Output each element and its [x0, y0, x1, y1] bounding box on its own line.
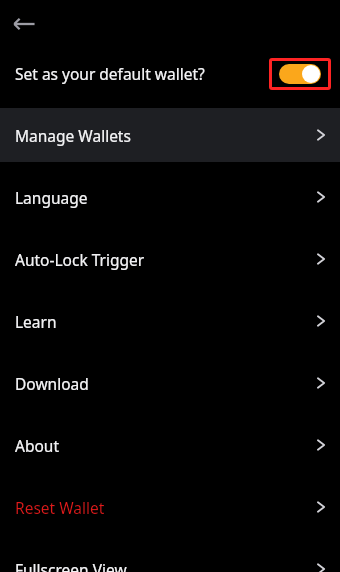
staticText: About	[15, 435, 59, 456]
button[interactable]: Manage Wallets	[0, 108, 340, 162]
button[interactable]: Learn	[0, 294, 340, 348]
button[interactable]: Download	[0, 356, 340, 410]
staticText: Auto-Lock Trigger	[15, 249, 145, 270]
button[interactable]: Fullscreen View	[0, 542, 340, 572]
staticText: Learn	[15, 311, 57, 332]
staticText: Language	[15, 187, 88, 208]
button[interactable]: Set as your default wallet toggle	[269, 58, 331, 90]
button[interactable]: About	[0, 418, 340, 472]
button[interactable]: Reset Wallet	[0, 480, 340, 534]
staticText: Fullscreen View	[15, 559, 127, 572]
staticText: Reset Wallet	[15, 497, 105, 518]
staticText: Download	[15, 373, 89, 394]
staticText: Manage Wallets	[15, 125, 131, 146]
button[interactable]: Auto-Lock Trigger	[0, 232, 340, 286]
button[interactable]: Back	[7, 9, 40, 38]
button[interactable]: Language	[0, 170, 340, 224]
staticText: Set as your default wallet?	[15, 63, 205, 84]
